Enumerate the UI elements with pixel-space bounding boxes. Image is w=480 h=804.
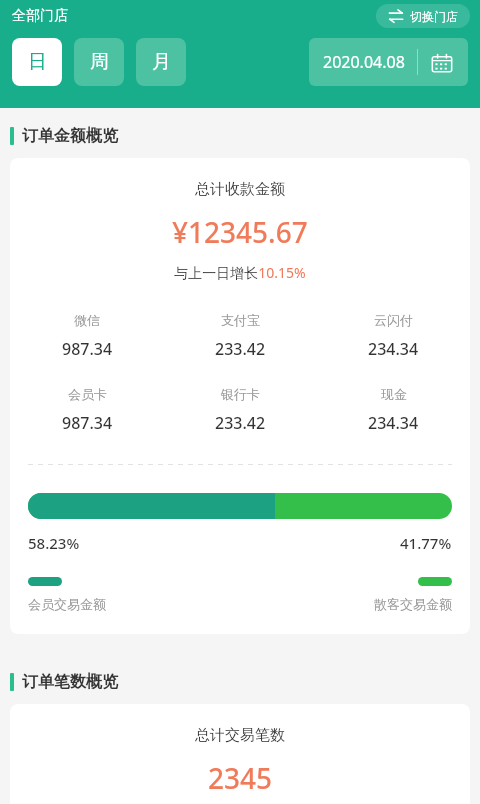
staticText: 订单笔数概览: [22, 672, 118, 692]
staticText: 现金: [381, 386, 407, 402]
staticText: 233.42: [215, 412, 266, 434]
staticText: 全部门店: [12, 7, 68, 25]
staticText: 支付宝: [221, 312, 260, 328]
staticText: 微信: [74, 312, 100, 328]
staticText: 987.34: [62, 412, 113, 434]
staticText: 切换门店: [410, 9, 458, 24]
staticText: 散客交易金额: [374, 596, 452, 612]
button[interactable]: 周: [74, 38, 124, 86]
staticText: 987.34: [62, 338, 113, 360]
staticText: ¥12345.67: [172, 213, 308, 251]
staticText: 2020.04.08: [323, 51, 405, 73]
button[interactable]: 月: [136, 38, 186, 86]
staticText: 云闪付: [374, 312, 413, 328]
staticText: 41.77%: [400, 533, 452, 553]
staticText: 58.23%: [28, 533, 80, 553]
staticText: 月: [152, 50, 171, 74]
staticText: 2345: [208, 759, 273, 797]
other: Switch store: [388, 8, 404, 24]
button[interactable]: 2020.04.08: [309, 38, 468, 86]
staticText: 会员交易金额: [28, 596, 106, 612]
staticText: 234.34: [368, 338, 419, 360]
staticText: 与上一日增长10.15%: [174, 263, 306, 282]
staticText: 总计交易笔数: [195, 726, 285, 745]
staticText: 周: [90, 50, 109, 74]
staticText: 234.34: [368, 412, 419, 434]
other: Select date: [430, 50, 454, 74]
button[interactable]: Switch store: [376, 4, 470, 28]
staticText: 订单金额概览: [22, 126, 118, 146]
button[interactable]: 日: [12, 38, 62, 86]
staticText: 总计收款金额: [195, 180, 285, 199]
staticText: 会员卡: [68, 386, 107, 402]
staticText: 233.42: [215, 338, 266, 360]
staticText: 银行卡: [221, 386, 260, 402]
staticText: 日: [28, 50, 47, 74]
